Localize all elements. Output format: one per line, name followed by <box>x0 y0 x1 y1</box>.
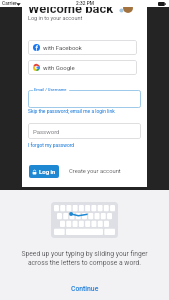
button[interactable]: Password <box>28 123 141 139</box>
button[interactable]: with Facebook <box>28 40 137 55</box>
button[interactable]: Continue <box>59 282 111 296</box>
button[interactable]: I forgot my password <box>28 142 75 148</box>
button[interactable]: Log in <box>29 165 59 178</box>
staticText: Log in <box>39 168 56 175</box>
button[interactable]: with Google <box>28 60 137 75</box>
button[interactable]: Skip the password; email me a login link <box>28 108 115 114</box>
staticText: 2:32 PM <box>76 1 94 7</box>
staticText: I forgot my password <box>28 142 75 148</box>
staticText: with Facebook <box>43 44 82 51</box>
staticText: Create your account <box>69 168 121 175</box>
button[interactable]: Create your account <box>69 168 121 175</box>
staticText: Speed up your typing by sliding your fin… <box>21 250 148 266</box>
staticText: Skip the password; email me a login link <box>28 108 115 114</box>
staticText: Password <box>33 128 60 135</box>
button[interactable]: Profile <box>123 3 133 13</box>
staticText: Carrier <box>2 1 17 7</box>
staticText: Continue <box>71 285 99 293</box>
button[interactable]: Email / Username <box>28 90 141 108</box>
staticText: Log in to your account <box>28 15 83 21</box>
staticText: Welcome back <box>28 1 114 16</box>
staticText: with Google <box>43 64 75 71</box>
staticText: Email / Username <box>34 87 67 92</box>
